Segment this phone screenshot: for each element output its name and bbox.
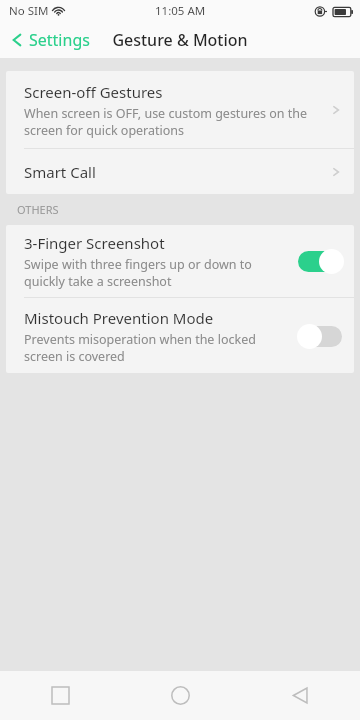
staticText: 3-Finger Screenshot [24,233,165,253]
staticText: No SIM [9,3,49,19]
button[interactable]: Toggle off [294,320,346,352]
staticText: Screen-off Gestures [24,82,163,102]
staticText: OTHERS [17,202,59,217]
button[interactable]: Smart Call [6,149,354,194]
button[interactable]: Recent apps [0,671,120,720]
staticText: Gesture & Motion [112,29,248,51]
staticText: 11:05 AM [155,3,206,19]
staticText: Smart Call [24,162,330,182]
staticText: Prevents misoperation when the locked sc… [24,331,290,364]
button[interactable]: Home [120,671,240,720]
button[interactable]: Settings [0,22,100,58]
button[interactable]: Screen-off Gestures [6,71,354,148]
staticText: Swipe with three fingers up or down to q… [24,256,290,289]
staticText: When screen is OFF, use custom gestures … [24,105,324,138]
button[interactable]: 3-Finger Screenshot [6,225,354,297]
button[interactable]: Mistouch Prevention Mode [6,298,354,373]
button[interactable]: Back [240,671,360,720]
staticText: Mistouch Prevention Mode [24,308,214,328]
staticText: Settings [29,29,90,51]
button[interactable]: Toggle on [294,245,346,277]
